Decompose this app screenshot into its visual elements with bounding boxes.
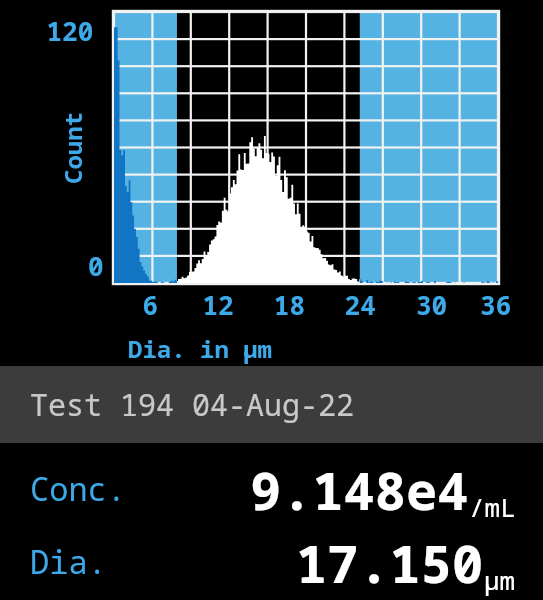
button[interactable]: Particle size histogram result	[0, 0, 543, 600]
